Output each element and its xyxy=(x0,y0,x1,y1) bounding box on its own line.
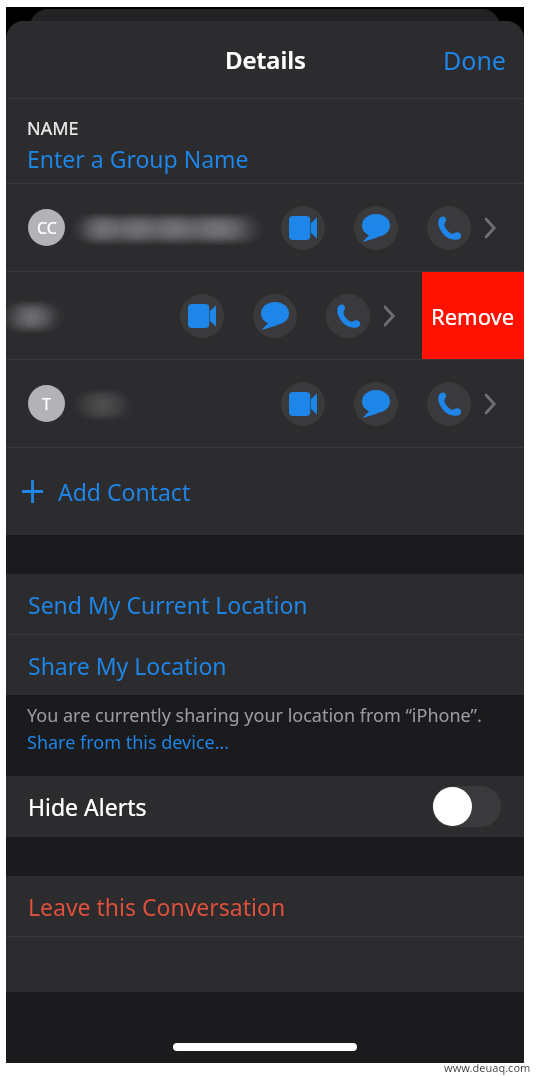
button[interactable]: Call xyxy=(326,294,370,338)
button[interactable]: Message xyxy=(354,382,398,426)
button[interactable]: Leave this Conversation xyxy=(6,876,524,936)
button[interactable]: Remove xyxy=(422,272,524,359)
staticText: Done xyxy=(443,43,506,77)
staticText: NAME xyxy=(27,116,79,141)
staticText: Details xyxy=(225,43,306,76)
button[interactable]: Video call xyxy=(281,206,325,250)
button[interactable]: Video call xyxy=(6,272,423,359)
staticText: You are currently sharing your location … xyxy=(27,703,482,728)
button[interactable]: Hide Alerts toggle xyxy=(432,786,501,827)
button[interactable]: Hide Alerts xyxy=(6,776,524,837)
button[interactable]: T xyxy=(6,360,524,447)
staticText: CC xyxy=(37,217,57,239)
button[interactable]: Share from this device… xyxy=(27,730,229,755)
staticText: Hide Alerts xyxy=(28,791,147,822)
button[interactable]: Share My Location xyxy=(6,635,524,695)
staticText: Enter a Group Name xyxy=(27,143,249,174)
button[interactable]: Message xyxy=(253,294,297,338)
staticText: Share My Location xyxy=(28,650,227,681)
button[interactable]: Video call xyxy=(180,294,224,338)
staticText: T xyxy=(42,393,51,415)
button[interactable]: Video call xyxy=(281,382,325,426)
staticText: Leave this Conversation xyxy=(28,891,286,922)
button[interactable]: Call xyxy=(427,382,471,426)
button[interactable]: Add Contact xyxy=(6,448,524,535)
button[interactable]: Call xyxy=(427,206,471,250)
button[interactable]: Message xyxy=(354,206,398,250)
button[interactable]: CC xyxy=(6,184,524,271)
button[interactable]: Send My Current Location xyxy=(6,574,524,634)
button[interactable]: Done xyxy=(435,35,514,85)
staticText: Add Contact xyxy=(58,476,191,507)
staticText: Send My Current Location xyxy=(28,589,308,620)
staticText: www.deuaq.com xyxy=(444,1060,531,1075)
staticText: Remove xyxy=(431,301,515,331)
button[interactable]: NAME xyxy=(6,99,524,183)
